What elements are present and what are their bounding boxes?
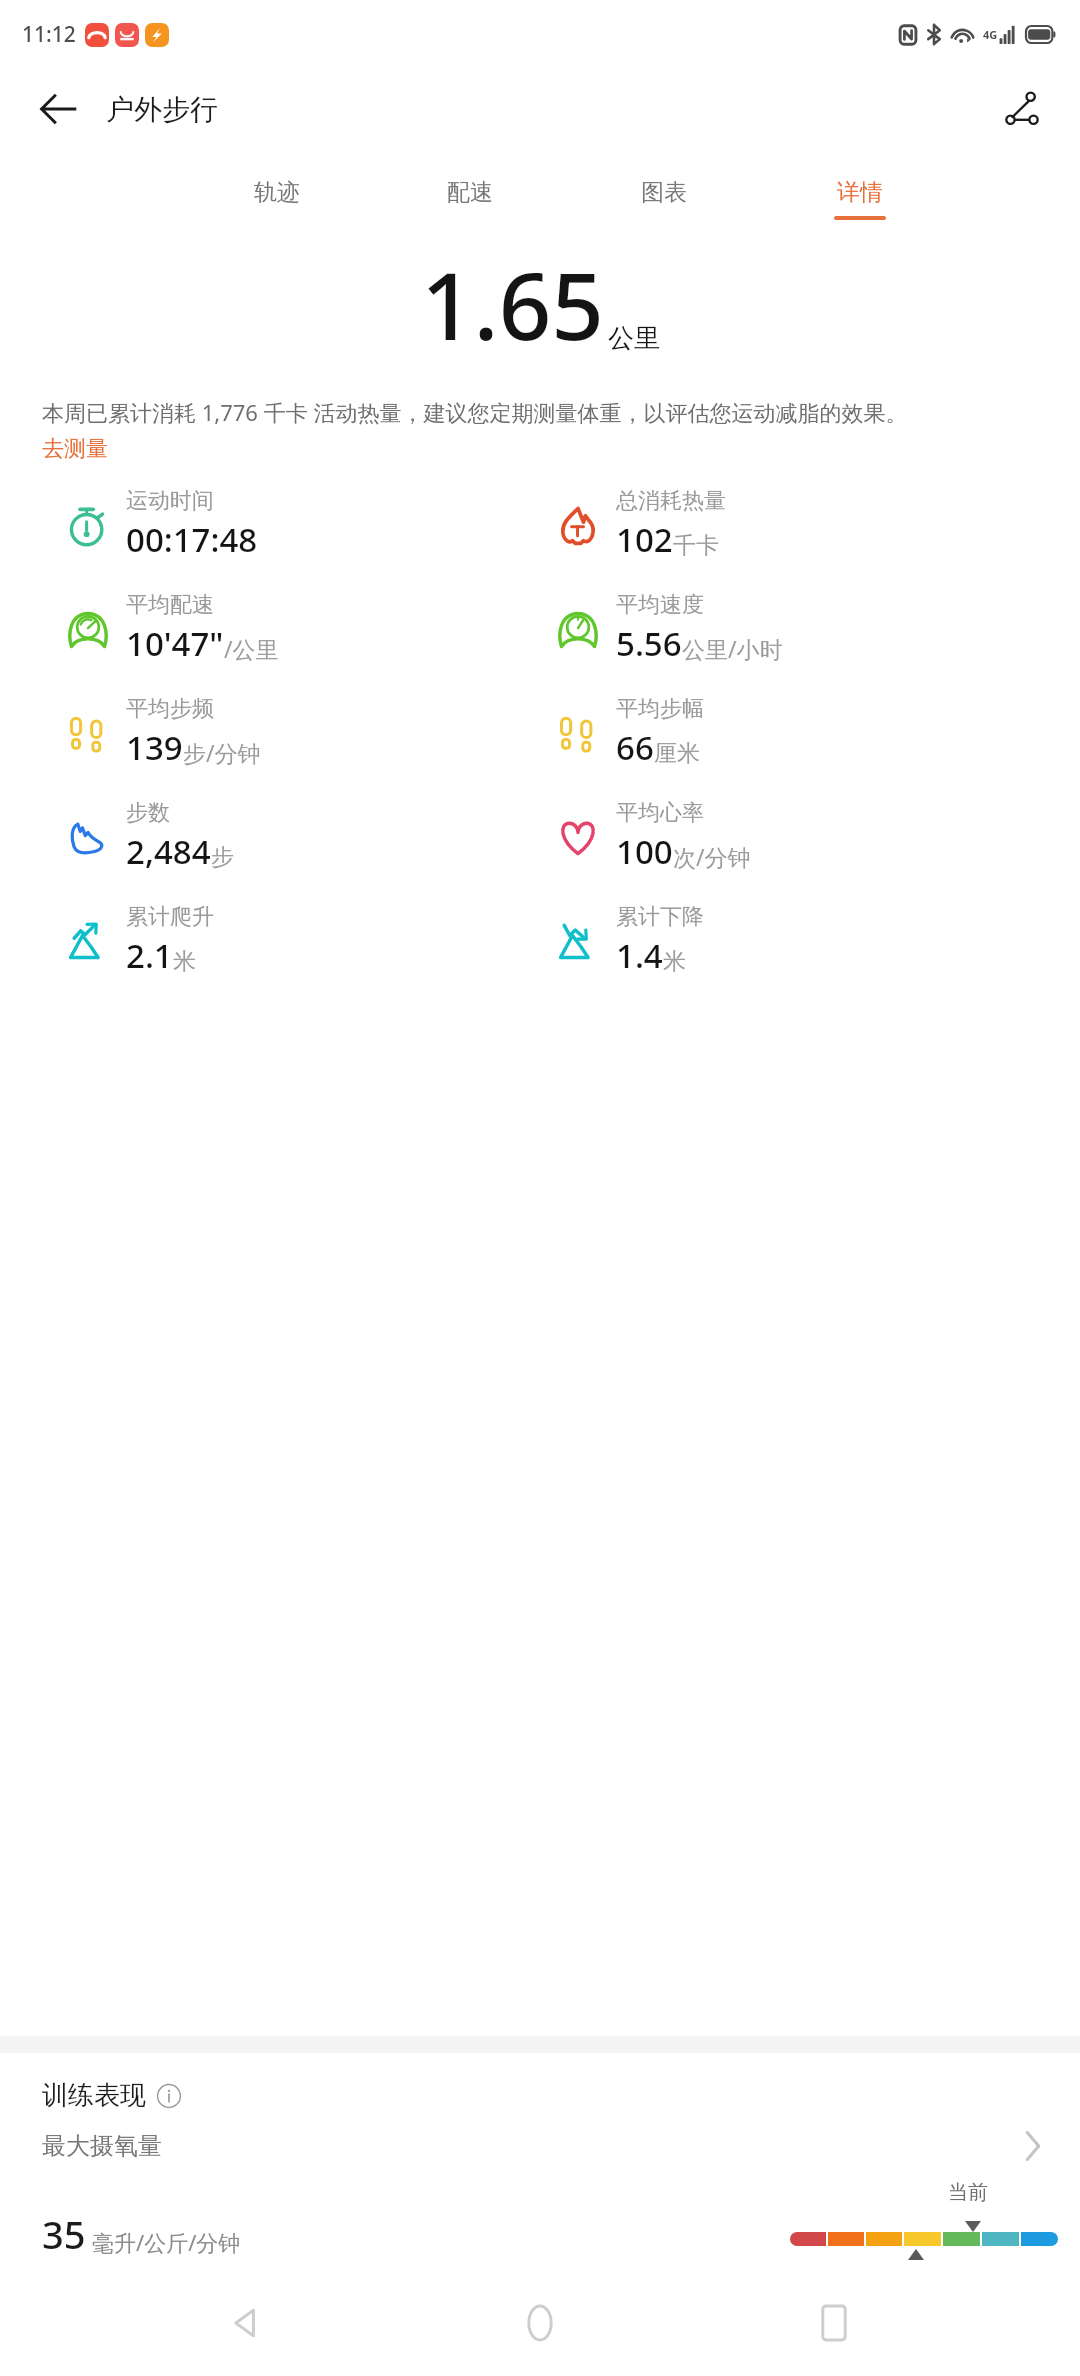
staticText: 102 — [616, 517, 673, 562]
button[interactable]: 平均步幅 — [552, 695, 704, 770]
button[interactable]: 平均步频 — [62, 695, 261, 770]
staticText: 当前 — [948, 2180, 988, 2205]
button[interactable]: Home — [492, 2275, 588, 2371]
staticText: 累计爬升 — [126, 903, 214, 931]
button[interactable]: Info — [156, 2083, 182, 2109]
staticText: 图表 — [641, 178, 687, 207]
staticText: 139 — [126, 725, 183, 770]
staticText: 米 — [663, 947, 686, 976]
staticText: 步/分钟 — [183, 737, 261, 768]
staticText: 次/分钟 — [673, 841, 751, 872]
staticText: 2.1 — [126, 933, 173, 978]
staticText: 35 — [42, 2208, 86, 2260]
button[interactable]: Share — [994, 81, 1050, 137]
button[interactable]: 去测量 — [42, 435, 108, 463]
staticText: 厘米 — [654, 739, 700, 768]
staticText: 4G — [983, 27, 998, 42]
staticText: 户外步行 — [106, 92, 218, 127]
staticText: 公里/小时 — [682, 633, 783, 664]
staticText: 步数 — [126, 799, 170, 827]
staticText: 总消耗热量 — [616, 487, 726, 515]
staticText: 本周已累计消耗 1,776 千卡 活动热量，建议您定期测量体重，以评估您运动减脂… — [42, 397, 908, 427]
button[interactable]: 配速 — [443, 178, 497, 220]
button[interactable]: 平均心率 — [552, 799, 751, 874]
button[interactable]: 图表 — [637, 178, 691, 220]
staticText: 平均速度 — [616, 591, 704, 619]
staticText: 去测量 — [42, 435, 108, 463]
staticText: 平均步幅 — [616, 695, 704, 723]
button[interactable]: Back — [30, 81, 86, 137]
staticText: /公里 — [224, 633, 279, 664]
staticText: 毫升/公斤/分钟 — [92, 2227, 241, 2257]
button[interactable]: 运动时间 — [62, 487, 258, 562]
staticText: 平均心率 — [616, 799, 704, 827]
staticText: 最大摄氧量 — [42, 2131, 162, 2161]
staticText: 00:17:48 — [126, 517, 258, 562]
button[interactable]: 平均配速 — [62, 591, 279, 666]
staticText: 轨迹 — [254, 178, 300, 207]
staticText: 10'47" — [126, 621, 224, 666]
button[interactable]: 最大摄氧量 — [0, 2130, 1080, 2162]
staticText: 平均步频 — [126, 695, 214, 723]
staticText: 运动时间 — [126, 487, 214, 515]
button[interactable]: 累计下降 — [552, 903, 704, 978]
button[interactable]: Back — [198, 2275, 294, 2371]
button[interactable]: 累计爬升 — [62, 903, 214, 978]
staticText: 平均配速 — [126, 591, 214, 619]
staticText: 11:12 — [22, 20, 76, 49]
button[interactable]: 详情 — [830, 178, 890, 220]
staticText: 步 — [211, 843, 234, 872]
button[interactable]: Recents — [786, 2275, 882, 2371]
button[interactable]: 总消耗热量 — [552, 487, 726, 562]
button[interactable]: 轨迹 — [250, 178, 304, 220]
staticText: 公里 — [608, 322, 660, 355]
staticText: 详情 — [837, 178, 883, 207]
button[interactable]: 平均速度 — [552, 591, 783, 666]
staticText: 累计下降 — [616, 903, 704, 931]
staticText: 配速 — [447, 178, 493, 207]
staticText: 66 — [616, 725, 654, 770]
staticText: 5.56 — [616, 621, 682, 666]
button[interactable]: 步数 — [62, 799, 234, 874]
staticText: 千卡 — [673, 531, 719, 560]
staticText: 1.4 — [616, 933, 663, 978]
staticText: 1.65 — [421, 242, 604, 367]
staticText: 米 — [173, 947, 196, 976]
staticText: 2,484 — [126, 829, 211, 874]
staticText: 训练表现 — [42, 2079, 146, 2112]
staticText: 100 — [616, 829, 673, 874]
